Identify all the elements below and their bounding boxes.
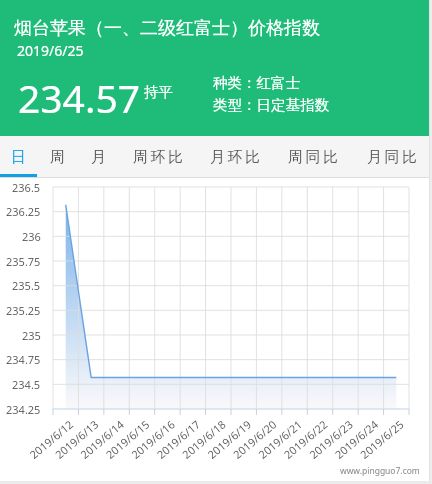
button[interactable]: 周环比 xyxy=(130,136,188,178)
staticText: 种类：红富士 xyxy=(213,74,300,92)
button[interactable]: 周 xyxy=(41,136,77,178)
staticText: 2019/6/25 xyxy=(17,41,84,60)
button[interactable]: 月同比 xyxy=(364,136,422,178)
staticText: 月 xyxy=(91,148,109,167)
staticText: 周同比 xyxy=(288,148,341,167)
staticText: 234.57 xyxy=(18,71,140,124)
staticText: 月环比 xyxy=(210,148,263,167)
button[interactable]: 日 xyxy=(2,136,38,178)
staticText: 烟台苹果（一、二级红富士）价格指数 xyxy=(14,17,320,40)
staticText: 类型：日定基指数 xyxy=(213,96,329,114)
button[interactable]: 月环比 xyxy=(207,136,265,178)
staticText: 日 xyxy=(11,148,29,167)
button[interactable]: 周同比 xyxy=(285,136,343,178)
staticText: 周 xyxy=(50,148,68,167)
staticText: 持平 xyxy=(144,83,173,101)
staticText: 周环比 xyxy=(133,148,186,167)
button[interactable]: 月 xyxy=(82,136,118,178)
staticText: 月同比 xyxy=(367,148,420,167)
